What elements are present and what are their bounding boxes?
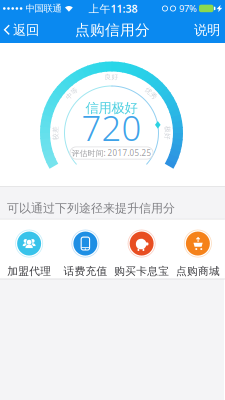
staticText: 中等 <box>65 89 79 97</box>
staticText: 可以通过下列途径来提升信用分 <box>7 201 175 216</box>
button[interactable]: 话费充值 <box>57 220 113 278</box>
button[interactable]: 返回 <box>0 17 39 43</box>
staticText: 点购商城 <box>176 264 220 278</box>
staticText: 话费充值 <box>63 264 107 278</box>
staticText: 中国联通 <box>25 3 61 14</box>
staticText: 97% <box>179 2 197 15</box>
staticText: 720 <box>81 104 141 150</box>
staticText: 加盟代理 <box>7 264 51 278</box>
staticText: 信用极好 <box>85 100 137 116</box>
button[interactable]: 点购商城 <box>170 220 225 278</box>
staticText: 返回 <box>13 22 39 38</box>
staticText: 评估时间: 2017.05.25 <box>71 148 151 158</box>
staticText: 点购信用分 <box>75 21 150 39</box>
staticText: 优秀 <box>144 89 158 97</box>
button[interactable]: 加盟代理 <box>1 220 57 278</box>
button[interactable]: 说明 <box>194 17 225 43</box>
staticText: 良好 <box>104 73 118 81</box>
staticText: 上午11:38 <box>88 1 137 16</box>
staticText: 较差 <box>48 129 62 137</box>
staticText: 购买卡息宝 <box>114 264 169 278</box>
staticText: 极好 <box>160 129 174 137</box>
button[interactable]: 购买卡息宝 <box>113 220 170 278</box>
staticText: 说明 <box>194 22 220 38</box>
